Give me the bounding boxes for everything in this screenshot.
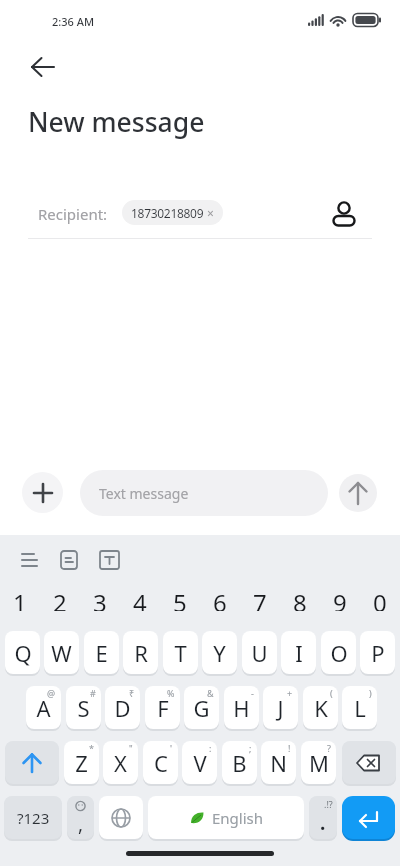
button[interactable]: Text message [80, 470, 328, 516]
staticText: New message [28, 104, 205, 140]
staticText: O [330, 638, 348, 668]
staticText: ₹ [129, 687, 135, 699]
button[interactable]: P [360, 631, 395, 674]
button[interactable]: 18730218809 [122, 200, 223, 225]
button[interactable]: Z [64, 741, 99, 784]
button[interactable]: B [222, 741, 257, 784]
staticText: G [193, 693, 210, 723]
button[interactable]: ?123 [4, 796, 62, 839]
button[interactable]: H [224, 686, 259, 729]
staticText: F [157, 693, 169, 723]
button[interactable]: .!? [309, 796, 337, 839]
button[interactable]: T [163, 631, 198, 674]
button[interactable]: 4 [120, 586, 160, 611]
button[interactable]: N [261, 741, 296, 784]
staticText: B [232, 748, 247, 778]
button[interactable]: C [143, 741, 178, 784]
staticText: .!? [324, 798, 333, 810]
staticText: J [277, 693, 284, 723]
button[interactable]: K [303, 686, 338, 729]
staticText: Text message [99, 484, 189, 503]
staticText: C [154, 748, 168, 778]
staticText: English [212, 808, 264, 828]
button[interactable] [22, 52, 62, 82]
button[interactable]: 9 [320, 586, 360, 611]
staticText: : [209, 742, 212, 754]
staticText: S [77, 693, 90, 723]
staticText: × [204, 205, 214, 221]
staticText: ?123 [17, 808, 50, 828]
button[interactable]: O [321, 631, 356, 674]
button[interactable] [58, 548, 82, 572]
button[interactable]: L [342, 686, 377, 729]
button[interactable] [97, 548, 121, 572]
staticText: H [233, 693, 250, 723]
staticText: Z [75, 748, 88, 778]
button[interactable]: A [26, 686, 61, 729]
staticText: * [89, 742, 94, 754]
staticText: Q [14, 638, 32, 668]
button[interactable]: E [84, 631, 119, 674]
button[interactable]: I [281, 631, 316, 674]
staticText: . [320, 810, 326, 836]
staticText: W [51, 638, 72, 668]
staticText: D [114, 693, 131, 723]
staticText: & [207, 687, 214, 699]
button[interactable]: W [44, 631, 79, 674]
button[interactable] [330, 196, 360, 230]
staticText: " [129, 742, 133, 754]
button[interactable]: X [103, 741, 138, 784]
button[interactable]: F [145, 686, 180, 729]
staticText: M [309, 748, 329, 778]
staticText: ) [369, 687, 372, 699]
button[interactable]: 2 [40, 586, 80, 611]
button[interactable]: English [148, 796, 304, 839]
button[interactable]: 7 [240, 586, 280, 611]
staticText: 1 [13, 586, 27, 611]
staticText: E [95, 638, 108, 668]
button[interactable]: J [263, 686, 298, 729]
staticText: ( [330, 687, 333, 699]
button[interactable]: D [105, 686, 140, 729]
staticText: 2:36 AM [52, 14, 95, 29]
button[interactable]: M [301, 741, 336, 784]
button[interactable] [18, 548, 44, 572]
button[interactable]: G [184, 686, 219, 729]
staticText: 9 [333, 586, 347, 611]
staticText: 8 [293, 586, 307, 611]
button[interactable] [99, 796, 143, 839]
button[interactable]: V [182, 741, 217, 784]
button[interactable]: 8 [280, 586, 320, 611]
staticText: % [167, 687, 175, 699]
button[interactable]: U [242, 631, 277, 674]
button[interactable]: Q [5, 631, 40, 674]
staticText: K [314, 693, 328, 723]
button[interactable] [339, 474, 377, 512]
staticText: @ [47, 687, 56, 699]
staticText: V [193, 748, 207, 778]
staticText: 5 [173, 586, 187, 611]
button[interactable]: 5 [160, 586, 200, 611]
button[interactable] [5, 741, 59, 784]
staticText: L [354, 693, 366, 723]
button[interactable]: 3 [80, 586, 120, 611]
button[interactable]: S [66, 686, 101, 729]
button[interactable] [342, 741, 396, 784]
button[interactable]: 6 [200, 586, 240, 611]
staticText: ? [327, 742, 331, 754]
staticText: 6 [213, 586, 227, 611]
staticText: ' [170, 742, 173, 754]
staticText: , [78, 811, 84, 837]
button[interactable]: , [67, 796, 94, 839]
button[interactable]: Y [202, 631, 237, 674]
button[interactable]: 0 [360, 586, 400, 611]
staticText: Recipient: [38, 204, 108, 224]
button[interactable]: 1 [0, 586, 40, 611]
button[interactable]: R [123, 631, 158, 674]
staticText: A [36, 693, 51, 723]
staticText: P [371, 638, 385, 668]
button[interactable] [342, 796, 395, 839]
button[interactable] [22, 472, 63, 513]
staticText: X [114, 748, 127, 778]
staticText: ! [288, 742, 291, 754]
